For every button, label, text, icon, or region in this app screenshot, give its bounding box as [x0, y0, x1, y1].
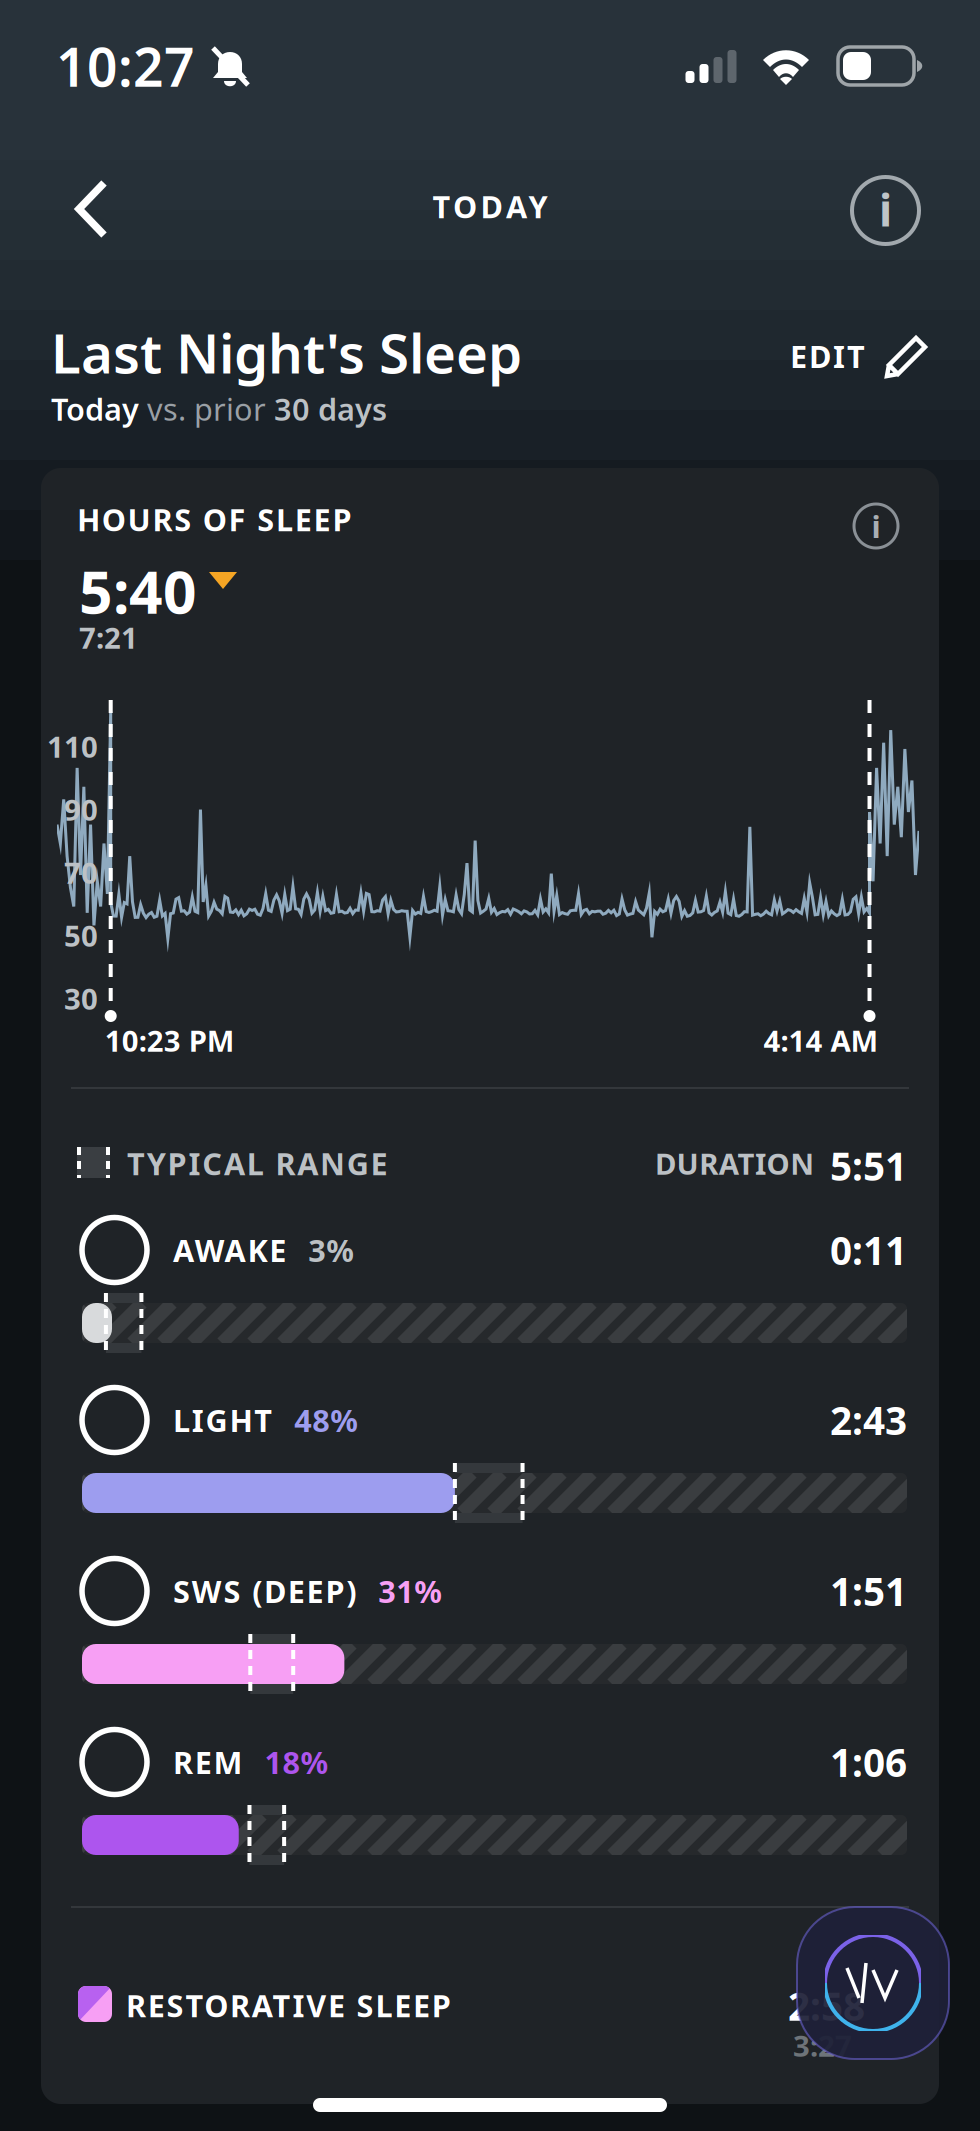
staticText: RESTORATIVE SLEEP	[126, 1985, 451, 2026]
staticText: 2:43	[830, 1394, 907, 1446]
staticText: 90	[64, 790, 98, 829]
staticText: vs. prior	[147, 389, 274, 429]
staticText: EDIT	[790, 336, 865, 376]
staticText: DURATION	[655, 1144, 814, 1183]
staticText: TODAY	[432, 186, 547, 227]
staticText: 30	[64, 979, 98, 1018]
staticText: SWS (DEEP)	[173, 1571, 356, 1611]
button[interactable]: About hours of sleep	[854, 504, 898, 548]
staticText: 30 days	[274, 389, 387, 429]
button[interactable]: Back	[54, 159, 130, 259]
staticText: 10:27	[56, 31, 195, 101]
staticText: i	[871, 506, 880, 546]
staticText: LIGHT	[173, 1400, 272, 1440]
staticText: 4:14 AM	[763, 1021, 878, 1060]
staticText: i	[879, 180, 892, 239]
staticText: 0:11	[830, 1224, 907, 1276]
button[interactable]: EDIT	[790, 324, 929, 388]
staticText: Last Night's Sleep	[51, 316, 522, 389]
staticText: 70	[64, 853, 98, 892]
button[interactable]: WHOOP Coach	[797, 1907, 949, 2059]
staticText: 18%	[265, 1742, 329, 1782]
staticText: 48%	[294, 1400, 358, 1440]
staticText: HOURS OF SLEEP	[77, 499, 351, 540]
staticText: 50	[64, 916, 98, 955]
staticText: REM	[173, 1742, 243, 1782]
staticText: 1:51	[830, 1565, 907, 1617]
staticText: 5:51	[830, 1140, 907, 1191]
staticText: AWAKE	[173, 1230, 286, 1270]
staticText: Today	[51, 389, 147, 429]
staticText: 3:27	[793, 2026, 852, 2065]
staticText: 31%	[378, 1571, 442, 1611]
staticText: TYPICAL RANGE	[127, 1143, 388, 1184]
staticText: 1:06	[830, 1736, 907, 1788]
staticText: 10:23 PM	[105, 1021, 235, 1060]
button[interactable]: Information	[834, 159, 937, 262]
staticText: 7:21	[79, 618, 138, 657]
staticText: 110	[47, 727, 98, 766]
staticText: 3%	[308, 1230, 354, 1270]
staticText: 2:58	[788, 1980, 865, 2031]
staticText: 5:40	[79, 552, 197, 630]
